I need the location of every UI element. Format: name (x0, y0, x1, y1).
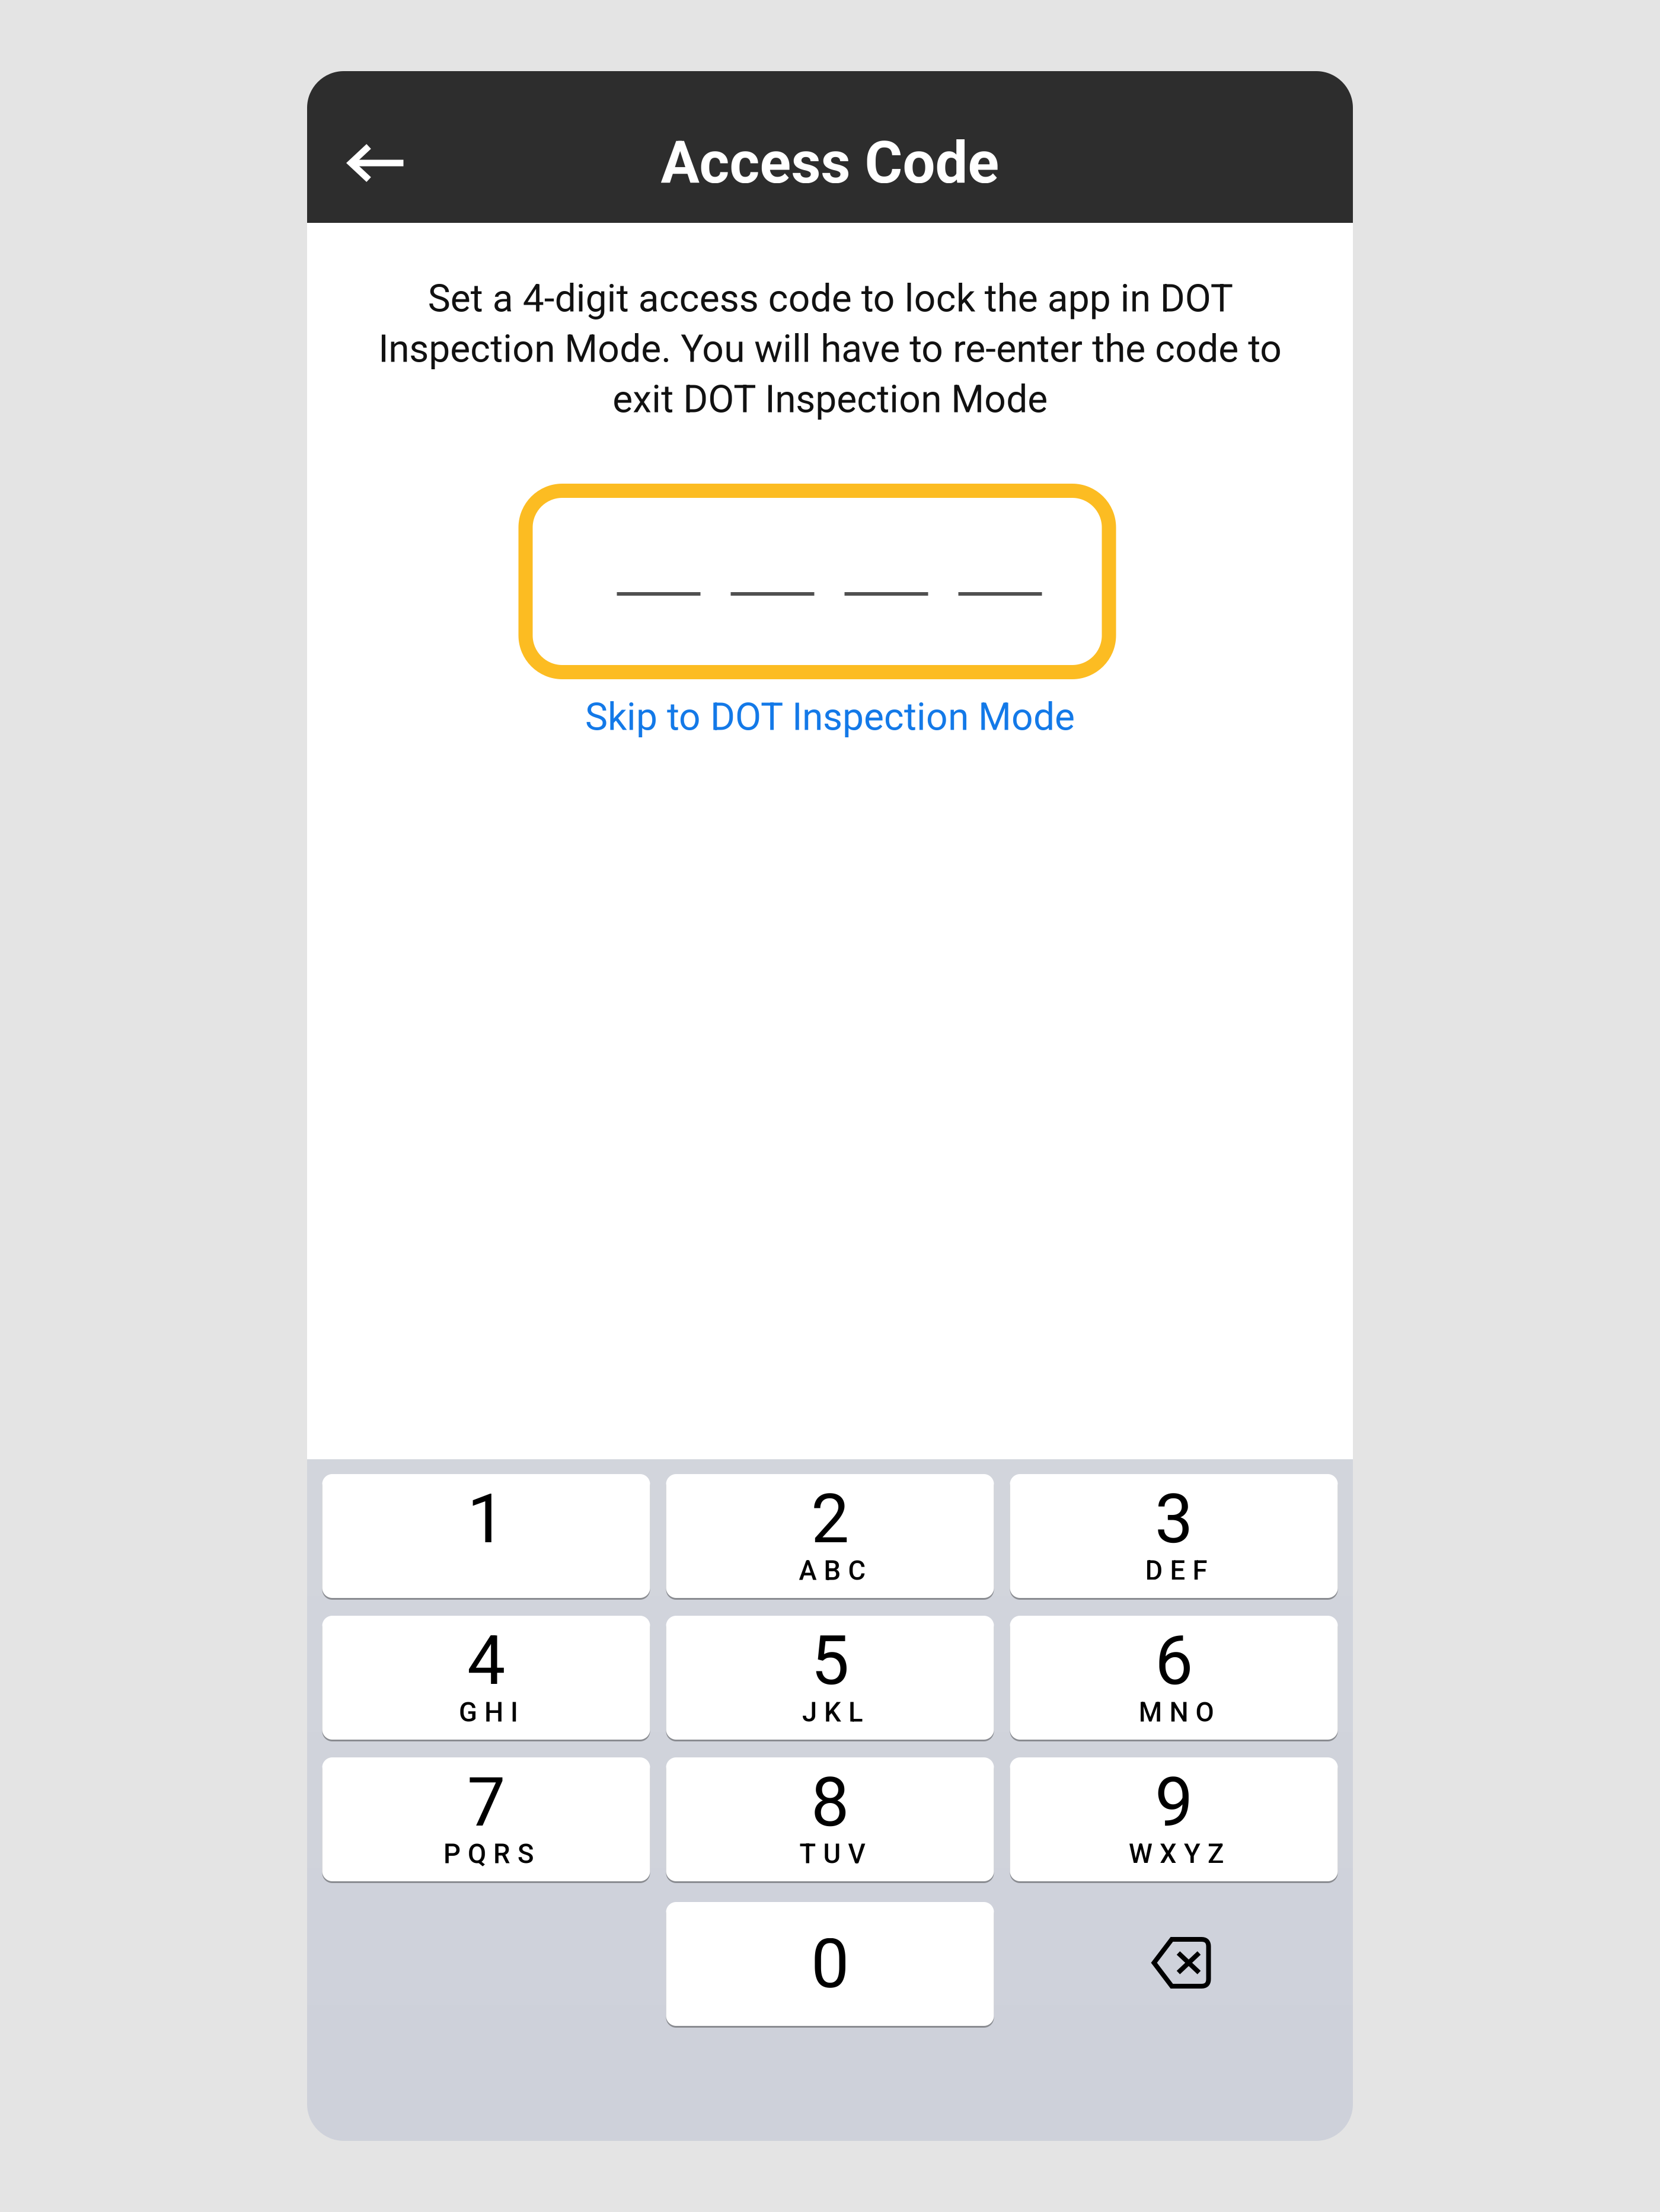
button[interactable]: 5 (666, 1614, 994, 1741)
button[interactable]: 7 (322, 1756, 650, 1883)
staticText: 3 (1155, 1479, 1193, 1559)
staticText: MNO (1139, 1697, 1214, 1728)
staticText: 1 (467, 1479, 505, 1559)
staticText: 7 (467, 1763, 505, 1842)
button[interactable]: Skip to DOT Inspection Mode (573, 679, 1087, 747)
staticText: GHI (459, 1697, 518, 1728)
staticText: 4 (467, 1621, 505, 1701)
button[interactable]: 9 (1010, 1756, 1338, 1883)
staticText: 5 (811, 1621, 849, 1701)
staticText: Set a 4-digit access code to lock the ap… (378, 276, 1282, 421)
staticText: ABC (799, 1555, 866, 1586)
button[interactable]: 3 (1010, 1472, 1338, 1600)
button[interactable]: Delete (1010, 1900, 1338, 2028)
staticText: Access Code (661, 129, 999, 197)
button[interactable]: 6 (1010, 1614, 1338, 1741)
staticText: Skip to DOT Inspection Mode (585, 695, 1075, 739)
staticText: WXYZ (1129, 1838, 1224, 1870)
button[interactable]: 0 (666, 1900, 994, 2028)
staticText: 6 (1155, 1621, 1193, 1701)
staticText: 0 (811, 1924, 849, 2004)
button[interactable]: 8 (666, 1756, 994, 1883)
staticText: TUV (799, 1838, 865, 1870)
staticText: 2 (811, 1479, 849, 1559)
staticText: 9 (1155, 1763, 1193, 1842)
button[interactable]: 2 (666, 1472, 994, 1600)
button[interactable]: Back (328, 116, 426, 210)
staticText: DEF (1145, 1555, 1207, 1586)
staticText: PQRS (443, 1838, 534, 1870)
staticText: JKL (802, 1697, 863, 1728)
staticText: 8 (811, 1763, 849, 1842)
button[interactable]: 1 (322, 1472, 650, 1600)
button[interactable]: 4 (322, 1614, 650, 1741)
